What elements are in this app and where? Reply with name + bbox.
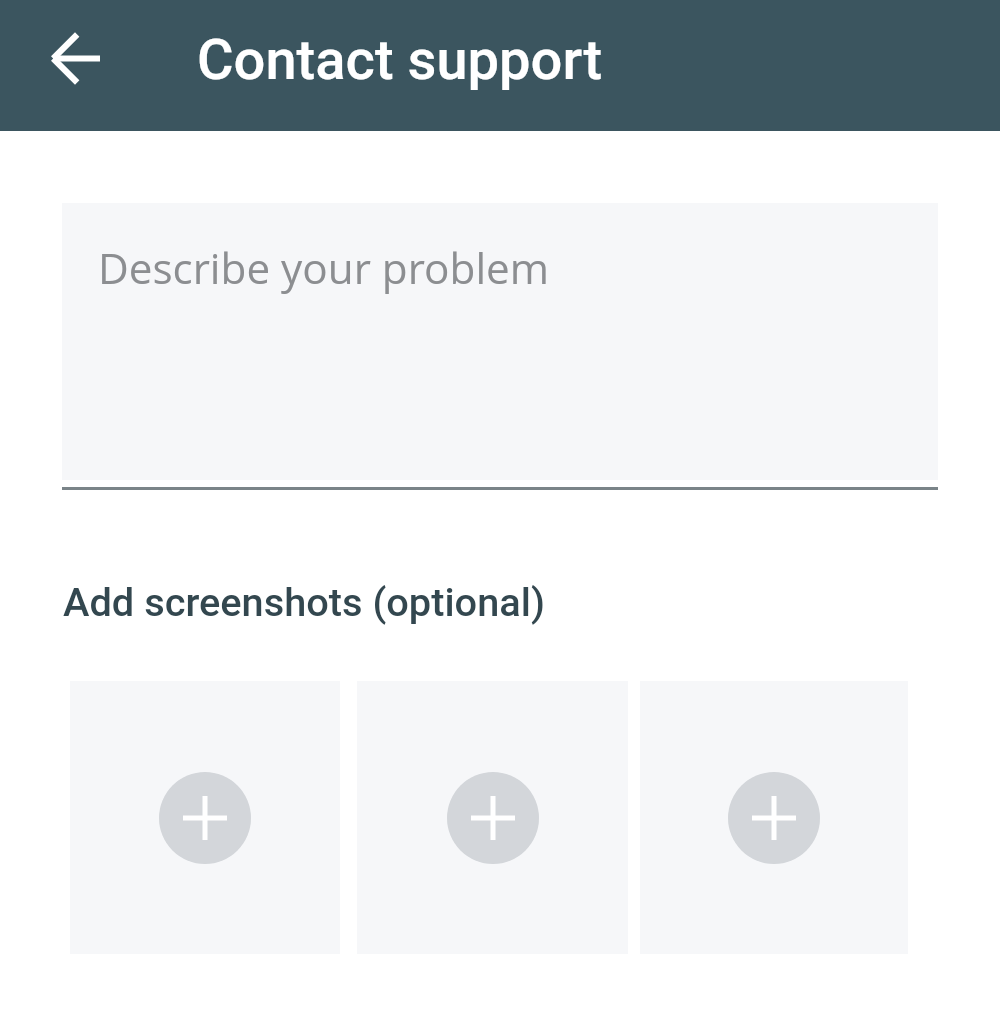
button[interactable]: Back (30, 13, 120, 103)
button[interactable]: Add screenshot (70, 681, 340, 954)
staticText: Contact support (197, 27, 603, 93)
button[interactable]: Add screenshot (357, 681, 628, 954)
button[interactable]: Describe your problem (62, 203, 938, 480)
staticText: Describe your problem (98, 239, 549, 296)
button[interactable]: Add screenshot (640, 681, 908, 954)
staticText: Add screenshots (optional) (63, 579, 545, 626)
